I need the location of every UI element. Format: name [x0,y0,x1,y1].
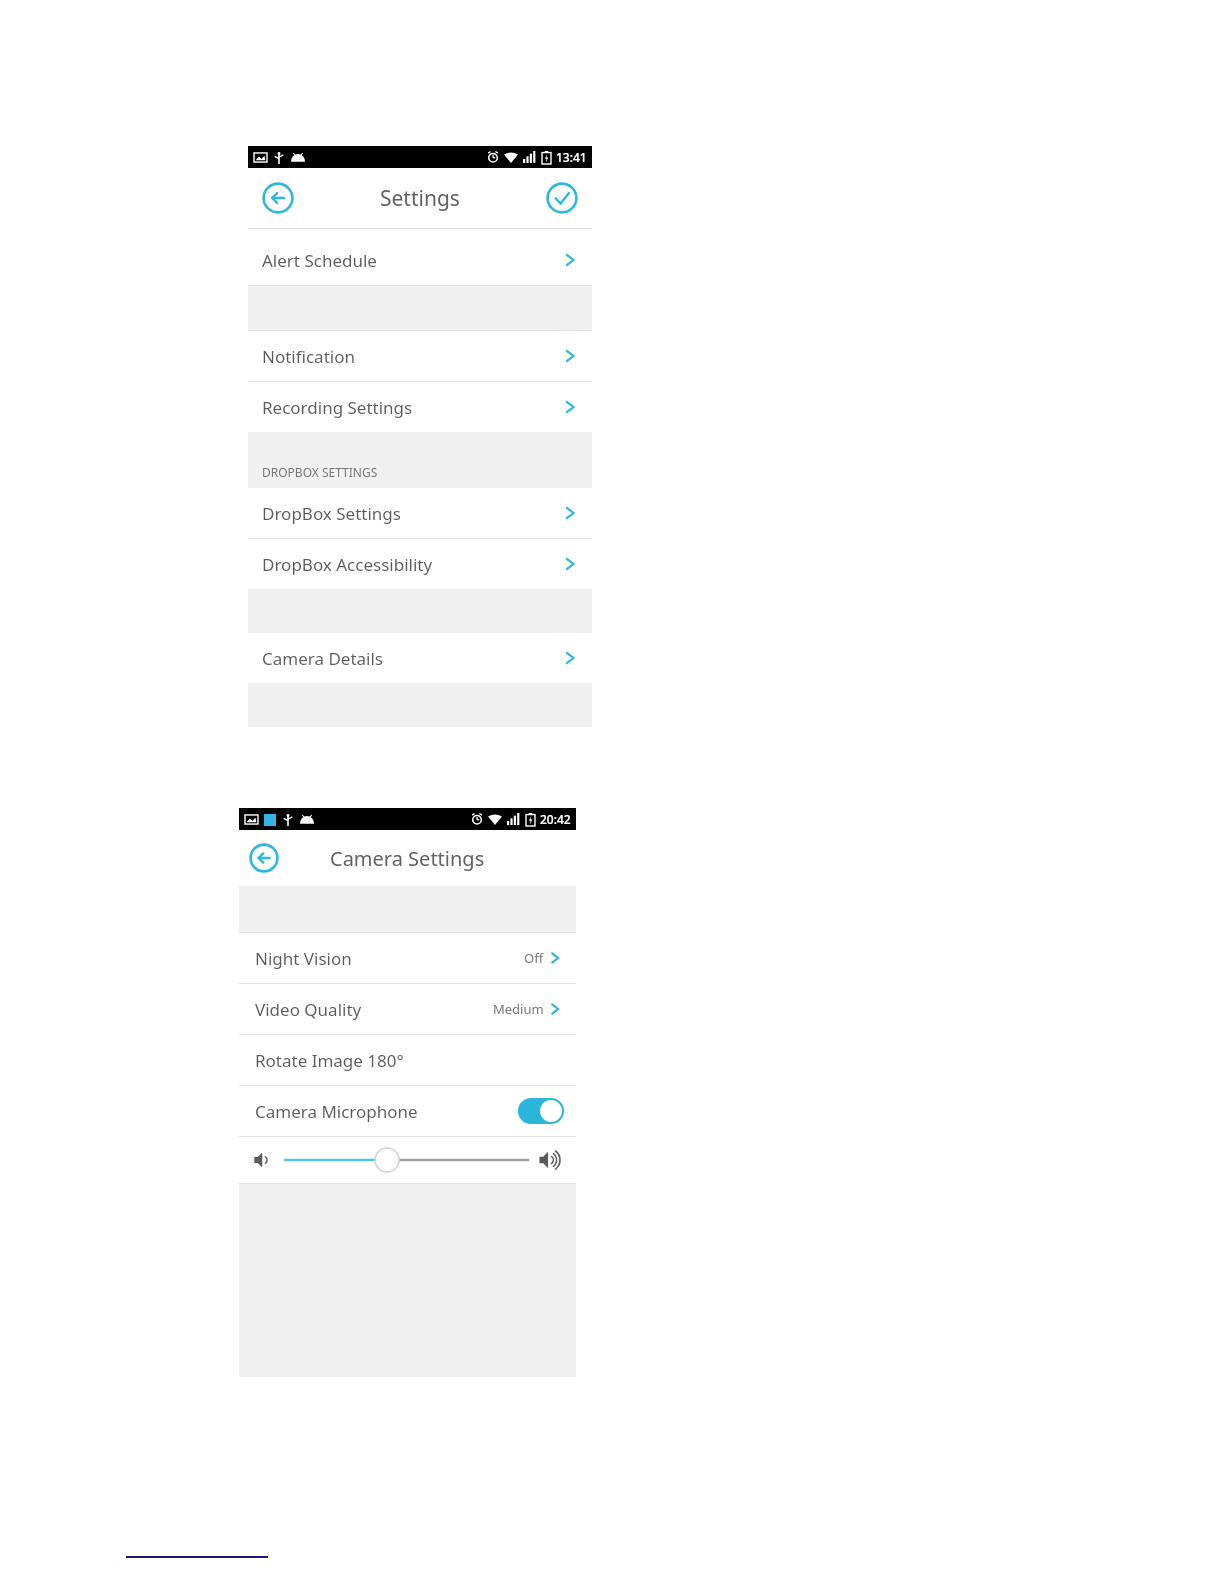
button[interactable]: DropBox Accessibility [248,539,592,589]
staticText: Camera Settings [330,845,485,872]
staticText: Night Vision [255,947,524,970]
staticText: Settings [380,184,460,213]
button[interactable]: Back [249,843,279,873]
staticText: DropBox Accessibility [262,553,562,576]
button[interactable]: Volume slider [285,1146,528,1174]
button[interactable]: Recording Settings [248,382,592,432]
staticText: Rotate Image 180° [255,1049,404,1072]
button[interactable]: Camera microphone toggle, on [518,1098,564,1124]
button[interactable]: Night Vision [239,933,576,983]
button[interactable]: Camera Microphone [239,1086,576,1136]
staticText: Alert Schedule [262,249,562,272]
button[interactable]: Alert Schedule [248,235,592,285]
staticText: DropBox Settings [262,502,562,525]
staticText: Camera Details [262,647,562,670]
button[interactable]: Camera Details [248,633,592,683]
staticText: Notification [262,345,562,368]
staticText: 13:41 [556,149,587,165]
button[interactable]: Notification [248,331,592,381]
staticText: Medium [493,1000,544,1018]
button[interactable]: Confirm [546,182,578,214]
staticText: Off [524,949,544,967]
button[interactable]: DropBox Settings [248,488,592,538]
staticText: Recording Settings [262,396,562,419]
button[interactable]: Rotate Image 180° [239,1035,576,1085]
staticText: 20:42 [540,811,571,827]
staticText: DROPBOX SETTINGS [262,464,378,480]
staticText: Video Quality [255,998,493,1021]
staticText: Camera Microphone [255,1100,518,1123]
button[interactable]: Back [262,182,294,214]
button[interactable]: Video Quality [239,984,576,1034]
